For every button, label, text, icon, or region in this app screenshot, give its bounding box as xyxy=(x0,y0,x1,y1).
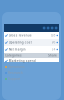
staticText: Marketing spend xyxy=(9,59,36,63)
staticText: Net margin xyxy=(9,48,26,51)
staticText: 96 xyxy=(51,41,55,44)
staticText: Research xyxy=(8,71,23,75)
staticText: 24 xyxy=(51,48,55,51)
staticText: Operations xyxy=(8,65,25,69)
staticText: Support xyxy=(8,77,20,81)
staticText: Categories xyxy=(5,54,22,57)
staticText: Operating cost xyxy=(9,41,32,44)
staticText: 128 xyxy=(50,34,55,37)
staticText: Share xyxy=(48,54,57,57)
staticText: Gross revenue xyxy=(9,34,32,37)
